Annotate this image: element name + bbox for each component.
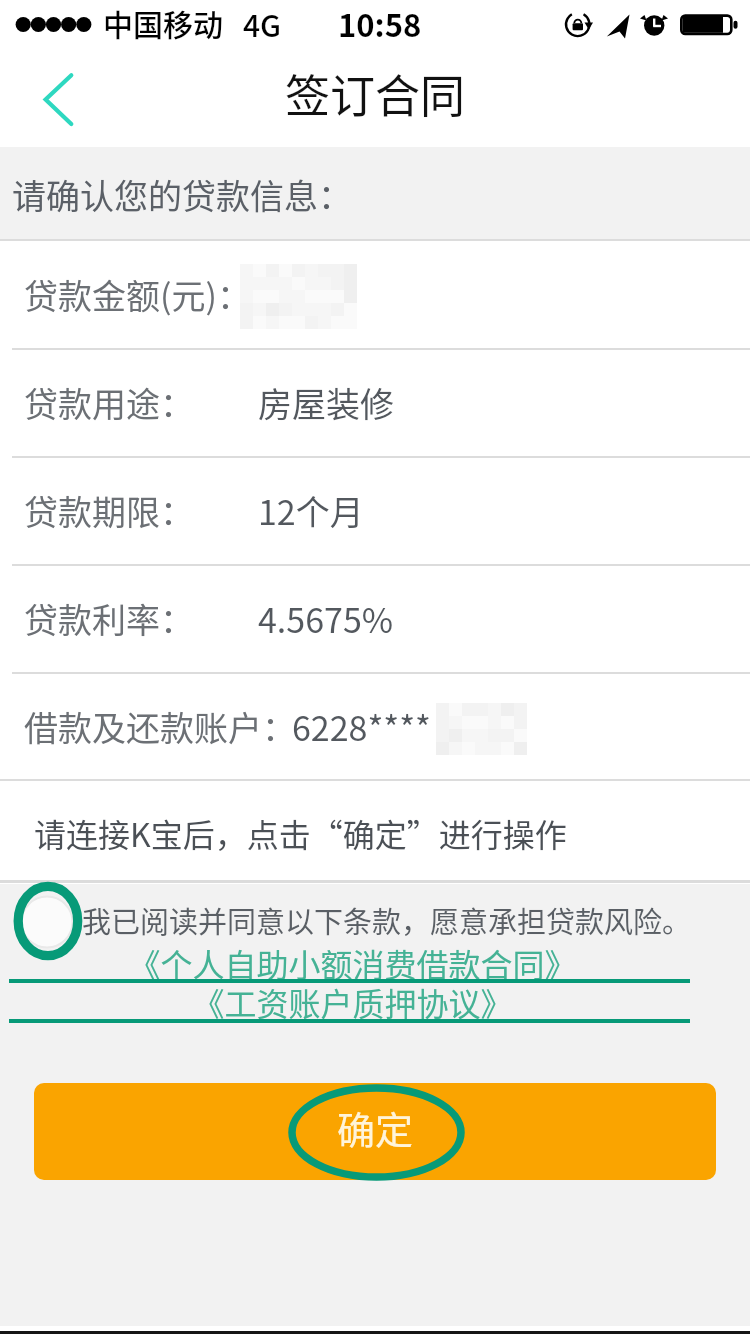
staticText: 6228**** <box>292 702 431 751</box>
button[interactable]: 贷款金额(元)： <box>0 240 750 348</box>
staticText: 请连接K宝后，点击“确定”进行操作 <box>34 810 567 856</box>
button[interactable]: 确定 <box>34 1083 716 1180</box>
staticText: 借款及还款账户： <box>24 702 296 751</box>
staticText: 确定 <box>337 1100 414 1155</box>
button[interactable]: 贷款用途： <box>0 348 750 456</box>
staticText: 请确认您的贷款信息： <box>12 170 352 219</box>
staticText: 房屋装修 <box>258 378 394 427</box>
staticText: 4G <box>243 2 282 45</box>
button[interactable]: 我已阅读并同意以下条款，愿意承担贷款风险。 <box>82 888 742 952</box>
staticText: 4.5675% <box>258 594 394 643</box>
staticText: 10:58 <box>338 1 422 46</box>
staticText: 我已阅读并同意以下条款，愿意承担贷款风险。 <box>82 899 692 941</box>
button[interactable]: Back <box>14 54 104 144</box>
staticText: 《个人自助小额消费借款合同》 <box>128 940 577 985</box>
button[interactable]: 借款及还款账户： <box>0 672 750 780</box>
staticText: 贷款用途： <box>24 378 194 427</box>
staticText: 中国移动 <box>103 1 223 44</box>
button[interactable]: Agree to terms checkbox <box>18 893 76 951</box>
staticText: 贷款利率： <box>24 594 194 643</box>
staticText: 贷款期限： <box>24 486 194 535</box>
staticText: 贷款金额(元)： <box>24 270 251 319</box>
button[interactable]: 贷款期限： <box>0 456 750 564</box>
staticText: 签订合同 <box>0 61 750 126</box>
staticText: 《工资账户质押协议》 <box>192 979 513 1024</box>
button[interactable]: 《个人自助小额消费借款合同》 <box>12 940 693 985</box>
staticText: 12个月 <box>258 486 364 535</box>
button[interactable]: 贷款利率： <box>0 564 750 672</box>
button[interactable]: 《工资账户质押协议》 <box>12 979 693 1024</box>
